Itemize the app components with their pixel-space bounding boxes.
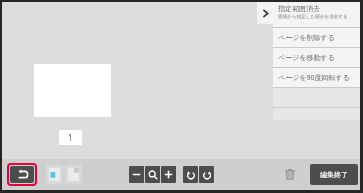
button[interactable]: ページを移動する <box>273 48 360 67</box>
button[interactable]: ページを90度回転する <box>273 68 360 87</box>
button[interactable]: Rotate right <box>199 166 214 183</box>
button[interactable]: Delete <box>283 167 297 181</box>
button[interactable]: 編集終了 <box>310 164 358 185</box>
staticText: ページを削除する <box>278 33 335 42</box>
button[interactable]: ページを削除する <box>273 28 360 47</box>
staticText: 編集終了 <box>320 170 348 179</box>
button[interactable]: Undo <box>10 166 34 183</box>
button[interactable]: Zoom <box>145 166 160 183</box>
button[interactable]: Zoom out <box>129 166 144 183</box>
staticText: 原稿から指定した部分を消去する <box>278 14 348 20</box>
button[interactable]: Expand menu <box>257 2 273 24</box>
button[interactable]: 指定範囲消去 <box>273 2 360 27</box>
staticText: ページを移動する <box>278 53 335 62</box>
staticText: ページを90度回転する <box>278 73 350 83</box>
button[interactable]: Zoom in <box>161 166 176 183</box>
staticText: 1 <box>68 132 73 143</box>
button[interactable]: Rotate left <box>183 166 198 183</box>
button[interactable]: Blank page <box>68 168 79 181</box>
staticText: 指定範囲消去 <box>278 4 320 13</box>
button[interactable]: Insert page <box>49 168 60 181</box>
